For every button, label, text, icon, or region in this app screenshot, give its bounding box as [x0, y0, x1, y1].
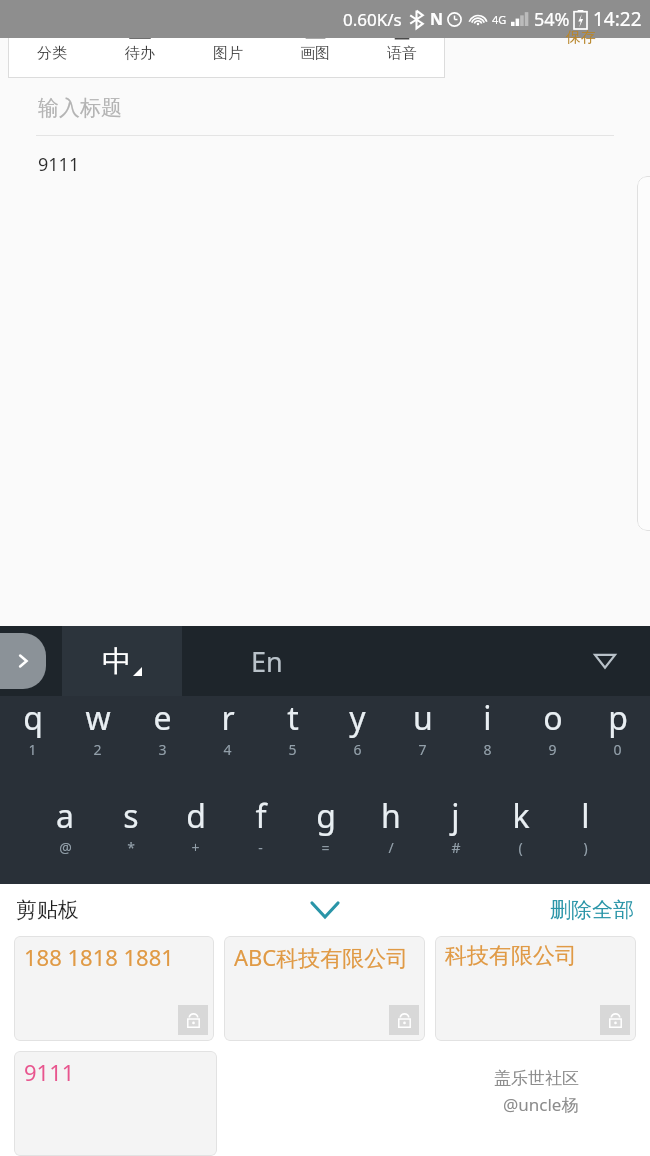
staticText: 1 — [28, 740, 37, 759]
staticText: 5 — [288, 740, 297, 759]
staticText: w — [85, 696, 111, 740]
button[interactable]: 科技有限公司 — [435, 936, 636, 1041]
staticText: o — [543, 696, 563, 740]
button[interactable]: 删除全部 — [550, 897, 634, 923]
button[interactable]: h — [358, 794, 423, 870]
staticText: = — [321, 838, 330, 857]
staticText: 删除全部 — [550, 897, 634, 923]
staticText: p — [608, 696, 628, 740]
button[interactable]: Expand — [0, 633, 46, 689]
button[interactable]: r — [195, 696, 260, 772]
button[interactable]: Collapse clipboard — [302, 887, 348, 933]
staticText: ABC科技有限公司 — [234, 942, 409, 972]
staticText: 剪贴板 — [16, 897, 79, 923]
button[interactable]: s — [98, 794, 163, 870]
button[interactable]: 画图 — [271, 8, 358, 78]
staticText: 0 — [613, 740, 622, 759]
staticText: 科技有限公司 — [445, 942, 577, 970]
button[interactable]: 分类 — [8, 8, 96, 78]
staticText: @ — [59, 838, 72, 857]
staticText: 4 — [223, 740, 232, 759]
staticText: + — [191, 838, 200, 857]
staticText: u — [413, 696, 433, 740]
button[interactable]: t — [260, 696, 325, 772]
staticText: N — [430, 8, 444, 30]
staticText: s — [123, 794, 139, 838]
button[interactable]: 188 1818 1881 — [14, 936, 214, 1041]
staticText: e — [153, 696, 172, 740]
button[interactable]: f — [228, 794, 293, 870]
staticText: 3 — [158, 740, 167, 759]
staticText: 语音 — [387, 44, 417, 63]
staticText: - — [258, 838, 263, 857]
staticText: y — [349, 696, 366, 740]
button[interactable]: g — [293, 794, 358, 870]
button[interactable]: k — [488, 794, 553, 870]
staticText: 6 — [353, 740, 362, 759]
staticText: 待办 — [125, 44, 155, 63]
staticText: En — [251, 643, 283, 680]
staticText: i — [483, 696, 492, 740]
button[interactable]: 9111 — [14, 1051, 217, 1156]
button[interactable]: i — [455, 696, 520, 772]
button[interactable]: 保存 — [566, 28, 596, 47]
button[interactable]: 图片 — [184, 8, 271, 78]
button[interactable]: d — [163, 794, 228, 870]
staticText: @uncle杨 — [503, 1093, 579, 1116]
button[interactable]: o — [520, 696, 585, 772]
staticText: 分类 — [37, 44, 67, 63]
staticText: ( — [518, 838, 523, 857]
staticText: / — [388, 838, 394, 857]
staticText: j — [451, 794, 460, 838]
button[interactable]: 中 — [62, 626, 182, 696]
button[interactable]: 语音 — [358, 8, 445, 78]
staticText: # — [451, 838, 461, 857]
button[interactable]: p — [585, 696, 650, 772]
staticText: 中 — [102, 643, 131, 680]
staticText: k — [512, 794, 530, 838]
button[interactable]: ABC科技有限公司 — [224, 936, 425, 1041]
staticText: 0.60K/s — [343, 8, 402, 31]
staticText: 2 — [93, 740, 102, 759]
staticText: 8 — [483, 740, 492, 759]
staticText: 9111 — [24, 1057, 75, 1087]
button[interactable]: 待办 — [96, 8, 184, 78]
staticText: 输入标题 — [38, 95, 122, 121]
button[interactable]: e — [130, 696, 195, 772]
staticText: h — [381, 794, 401, 838]
button[interactable]: Hide keyboard — [588, 644, 622, 678]
staticText: f — [255, 794, 267, 838]
button[interactable]: y — [325, 696, 390, 772]
button[interactable]: q — [0, 696, 65, 772]
staticText: a — [56, 794, 74, 838]
staticText: l — [581, 794, 590, 838]
staticText: t — [287, 696, 299, 740]
staticText: d — [186, 794, 206, 838]
staticText: 图片 — [213, 44, 243, 63]
staticText: r — [221, 696, 235, 740]
staticText: 7 — [418, 740, 427, 759]
button[interactable]: u — [390, 696, 455, 772]
staticText: q — [23, 696, 43, 740]
button[interactable]: En — [182, 626, 352, 696]
staticText: 盖乐世社区 — [494, 1068, 579, 1089]
staticText: 188 1818 1881 — [24, 942, 174, 972]
button[interactable]: a — [32, 794, 98, 870]
staticText: 4G — [492, 12, 507, 27]
staticText: 9 — [548, 740, 557, 759]
staticText: ) — [583, 838, 588, 857]
button[interactable]: l — [553, 794, 618, 870]
button[interactable]: j — [423, 794, 488, 870]
staticText: 9111 — [38, 152, 80, 177]
staticText: 保存 — [566, 28, 596, 47]
staticText: * — [127, 838, 135, 857]
staticText: g — [316, 794, 336, 838]
staticText: 画图 — [300, 44, 330, 63]
button[interactable]: w — [65, 696, 130, 772]
staticText: 54% — [534, 7, 570, 32]
staticText: 14:22 — [593, 6, 642, 32]
